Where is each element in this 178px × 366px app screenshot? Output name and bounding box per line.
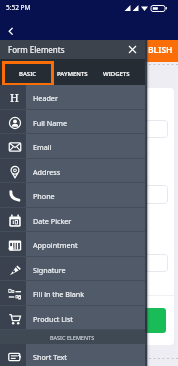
button[interactable]: Fill in the Blank [0, 281, 145, 306]
staticText: Header [33, 93, 58, 103]
staticText: BASIC ELEMENTS [50, 334, 95, 341]
button[interactable] [140, 40, 178, 62]
button[interactable] [144, 308, 166, 333]
button[interactable]: WIDGETS [94, 61, 138, 86]
staticText: Phone [33, 191, 55, 201]
staticText: Form Elements [8, 44, 65, 55]
staticText: Date Picker [33, 216, 72, 226]
button[interactable]: Phone [0, 183, 145, 208]
staticText: Address [33, 167, 61, 177]
button[interactable]: PAYMENTS [50, 61, 94, 86]
button[interactable]: Date Picker [0, 208, 145, 233]
button[interactable]: Short Text [0, 344, 145, 366]
staticText: Product List [33, 314, 73, 324]
button[interactable]: BASIC [2, 61, 54, 86]
button[interactable]: Email [0, 134, 145, 159]
staticText: Signature [33, 265, 66, 275]
staticText: BLISH [148, 44, 173, 56]
button[interactable] [7, 27, 15, 36]
staticText: Fill in the Blank [33, 289, 85, 299]
staticText: Appointment [33, 240, 78, 250]
button[interactable]: H [0, 85, 145, 110]
staticText: BASIC [19, 70, 37, 78]
button[interactable]: Full Name [0, 110, 145, 135]
staticText: Full Name [33, 118, 68, 128]
staticText: PAYMENTS [57, 70, 88, 78]
button[interactable]: Signature [0, 257, 145, 282]
staticText: WIDGETS [103, 70, 130, 78]
button[interactable]: Product List [0, 306, 145, 331]
staticText: Short Text [33, 352, 67, 362]
staticText: 5:52 PM [6, 3, 31, 12]
staticText: Email [33, 142, 52, 152]
staticText: H [10, 90, 19, 105]
button[interactable]: Address [0, 159, 145, 184]
button[interactable]: Appointment [0, 232, 145, 257]
button[interactable] [128, 45, 137, 54]
